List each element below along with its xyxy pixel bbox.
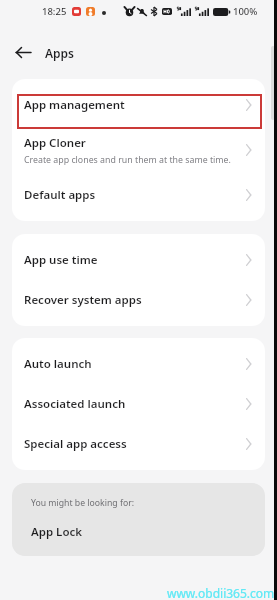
button[interactable]: Recover system apps [12,280,265,320]
staticText: 100% [233,5,258,18]
staticText: You might be looking for: [31,497,135,509]
staticText: App use time [24,252,98,268]
button[interactable]: App use time [12,240,265,280]
button[interactable]: Associated launch [12,384,265,424]
button[interactable]: App Lock [12,518,265,546]
button[interactable]: App management [12,85,265,125]
button[interactable]: Default apps [12,175,265,215]
staticText: Auto launch [24,356,92,372]
staticText: Default apps [24,187,96,203]
staticText: Associated launch [24,396,126,412]
button[interactable]: App Cloner [12,125,265,175]
button[interactable]: Special app access [12,424,265,464]
button[interactable]: Back [10,39,36,65]
staticText: 18:25 [42,5,67,18]
button[interactable]: Auto launch [12,344,265,384]
staticText: App Lock [31,524,83,540]
staticText: Special app access [24,436,127,452]
staticText: Apps [45,45,75,61]
staticText: www.obdii365.com [167,585,275,600]
staticText: App management [24,97,125,113]
staticText: App Cloner [24,135,86,151]
staticText: Create app clones and run them at the sa… [24,154,231,166]
staticText: Recover system apps [24,292,142,308]
